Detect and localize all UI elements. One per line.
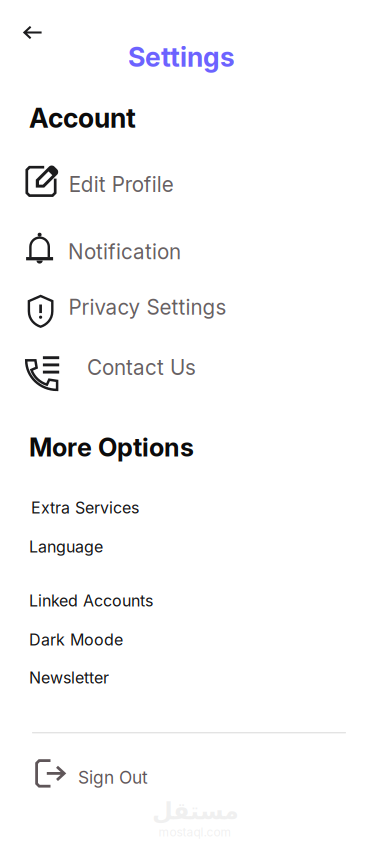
- staticText: mostaql.com: [158, 825, 231, 839]
- staticText: Extra Services: [31, 498, 139, 517]
- staticText: مستقل: [151, 797, 238, 825]
- button[interactable]: Dark Moode: [29, 621, 359, 651]
- staticText: Privacy Settings: [69, 295, 227, 320]
- staticText: More Options: [29, 432, 194, 463]
- button[interactable]: Extra Services: [31, 489, 361, 519]
- staticText: Edit Profile: [69, 172, 174, 197]
- staticText: Linked Accounts: [29, 591, 153, 610]
- button[interactable]: Notification: [26, 231, 384, 285]
- button[interactable]: Contact Us: [25, 345, 383, 399]
- button[interactable]: Edit Profile: [25, 158, 383, 212]
- staticText: Contact Us: [87, 355, 196, 380]
- button[interactable]: Language: [29, 528, 359, 558]
- button[interactable]: Privacy Settings: [27, 295, 385, 349]
- button[interactable]: Sign Out: [35, 755, 365, 793]
- staticText: Sign Out: [78, 767, 148, 788]
- staticText: Notification: [68, 239, 181, 264]
- staticText: Language: [29, 537, 103, 556]
- staticText: Settings: [128, 41, 235, 73]
- button[interactable]: Linked Accounts: [29, 582, 359, 612]
- staticText: Account: [29, 102, 136, 134]
- button[interactable]: Newsletter: [29, 659, 359, 689]
- staticText: Newsletter: [29, 668, 109, 687]
- staticText: Dark Moode: [29, 630, 123, 649]
- button[interactable]: Back: [9, 10, 53, 54]
